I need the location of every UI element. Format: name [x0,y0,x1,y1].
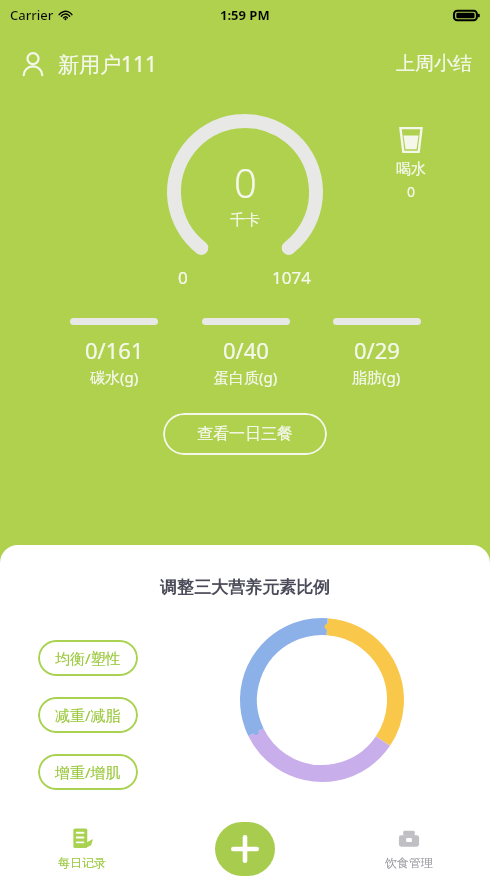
staticText: 增重/增肌 [55,762,121,782]
staticText: 0 [407,182,416,201]
staticText: 0/29 [354,335,400,365]
staticText: 0 [234,155,257,209]
button[interactable]: 新用户111 [18,49,158,79]
staticText: 蛋白质(g) [214,367,278,387]
button[interactable]: 点此上传 [215,822,275,876]
staticText: 碳水(g) [90,367,139,387]
button[interactable]: 均衡/塑性 [38,640,138,676]
staticText: 1:59 PM [220,6,270,24]
staticText: 均衡/塑性 [55,648,121,668]
staticText: 新用户111 [58,50,158,79]
staticText: 0/40 [223,335,269,365]
staticText: 喝水 [396,160,426,179]
button[interactable]: 喝水 [395,124,427,201]
button[interactable]: 查看一日三餐 [163,413,327,455]
staticText: 饮食管理 [385,855,433,870]
staticText: 0 [178,266,188,289]
button[interactable]: 每日记录 [0,820,164,876]
staticText: 查看一日三餐 [197,424,293,444]
staticText: 脂肪(g) [352,367,401,387]
button[interactable]: 饮食管理 [327,820,490,876]
staticText: 调整三大营养元素比例 [160,577,330,598]
button[interactable]: 上周小结 [396,52,472,76]
staticText: 千卡 [230,211,260,230]
staticText: 上周小结 [396,52,472,76]
button[interactable]: 增重/增肌 [38,754,138,790]
staticText: 减重/减脂 [55,705,121,725]
staticText: 1074 [272,266,311,289]
button[interactable]: 减重/减脂 [38,697,138,733]
staticText: Carrier [10,6,54,24]
staticText: 0/161 [85,335,144,365]
staticText: 每日记录 [58,855,106,870]
